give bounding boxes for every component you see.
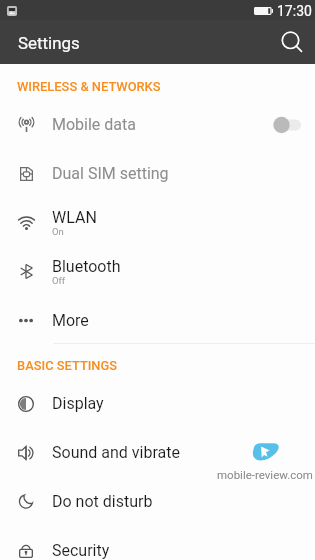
staticText: Off <box>52 275 66 286</box>
staticText: Dual SIM setting <box>52 164 169 183</box>
staticText: mobile-review.com <box>217 468 313 481</box>
button[interactable]: Bluetooth <box>0 247 315 296</box>
staticText: On <box>52 226 64 237</box>
staticText: WLAN <box>52 208 97 227</box>
button[interactable]: Security <box>0 526 315 560</box>
staticText: Mobile data <box>52 115 136 134</box>
staticText: More <box>52 311 89 330</box>
staticText: Settings <box>18 33 80 53</box>
staticText: WIRELESS & NETWORKS <box>17 79 161 94</box>
button[interactable]: Dual SIM setting <box>0 149 315 198</box>
button[interactable]: Mobile data <box>0 100 315 149</box>
button[interactable]: Do not disturb <box>0 477 315 526</box>
staticText: BASIC SETTINGS <box>17 358 118 373</box>
staticText: 17:30 <box>277 3 312 19</box>
button[interactable]: Mobile data <box>269 115 301 135</box>
staticText: Security <box>52 541 110 560</box>
button[interactable]: Search <box>274 24 310 60</box>
button[interactable]: Sound and vibrate <box>0 428 315 477</box>
staticText: Do not disturb <box>52 492 153 511</box>
staticText: Sound and vibrate <box>52 443 180 462</box>
button[interactable]: Display <box>0 379 315 428</box>
staticText: Bluetooth <box>52 257 121 276</box>
button[interactable]: More <box>0 296 315 345</box>
button[interactable]: WLAN <box>0 198 315 247</box>
staticText: Display <box>52 394 104 413</box>
